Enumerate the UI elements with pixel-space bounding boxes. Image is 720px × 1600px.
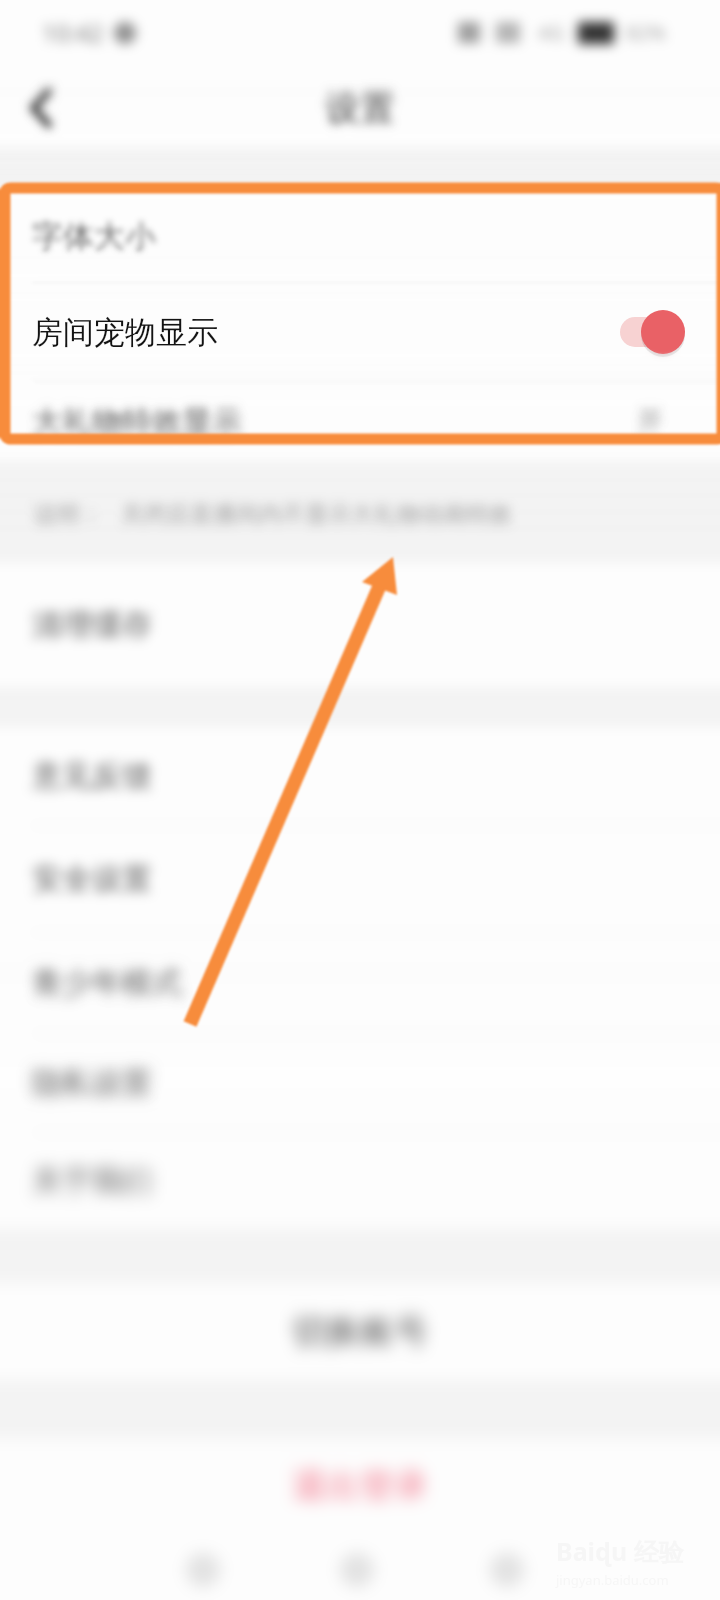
button[interactable]: 隐私设置	[0, 1034, 720, 1132]
button[interactable]: 青少年模式	[0, 933, 720, 1033]
button[interactable]: 清理缓存	[0, 563, 720, 687]
button[interactable]: Back	[186, 1553, 220, 1587]
button[interactable]: Back	[13, 80, 69, 136]
button[interactable]: 意见反馈	[0, 727, 720, 825]
button[interactable]: 退出登录	[0, 1439, 720, 1531]
button[interactable]: 青少年模式	[0, 933, 720, 1033]
button[interactable]: 青少年模式	[0, 933, 720, 1033]
button[interactable]: Back	[186, 1553, 220, 1587]
button[interactable]: Back	[13, 80, 69, 136]
staticText: 切换账号	[292, 1310, 428, 1353]
button[interactable]: Recents	[490, 1553, 524, 1587]
button[interactable]: 青少年模式	[0, 933, 720, 1033]
button[interactable]: 安全设置	[0, 826, 720, 932]
button[interactable]: 大礼物特效显示	[0, 382, 720, 461]
button[interactable]: 退出登录	[0, 1439, 720, 1531]
button[interactable]: 隐私设置	[0, 1034, 720, 1132]
button[interactable]: 意见反馈	[0, 727, 720, 825]
button[interactable]: Home	[340, 1553, 374, 1587]
button[interactable]: 切换账号	[0, 1283, 720, 1380]
button[interactable]: 切换账号	[0, 1283, 720, 1380]
button[interactable]: Back	[13, 80, 69, 136]
button[interactable]: 房间宠物显示	[0, 283, 720, 381]
button[interactable]: 房间宠物显示	[0, 283, 720, 381]
button[interactable]: Home	[340, 1553, 374, 1587]
button[interactable]: Back	[13, 80, 69, 136]
button[interactable]: 关于我们	[0, 1133, 720, 1229]
button[interactable]: 安全设置	[0, 826, 720, 932]
button[interactable]: 安全设置	[0, 826, 720, 932]
button[interactable]: Recents	[490, 1553, 524, 1587]
button[interactable]: 字体大小	[0, 190, 720, 282]
button[interactable]: 青少年模式	[0, 933, 720, 1033]
button[interactable]: 青少年模式	[0, 933, 720, 1033]
button[interactable]: 安全设置	[0, 826, 720, 932]
button[interactable]: 隐私设置	[0, 1034, 720, 1132]
button[interactable]: Back	[186, 1553, 220, 1587]
button[interactable]: 隐私设置	[0, 1034, 720, 1132]
button[interactable]: 字体大小	[0, 190, 720, 282]
button[interactable]: Room pet display toggle	[620, 307, 685, 357]
button[interactable]: Home	[340, 1553, 374, 1587]
button[interactable]: 房间宠物显示	[0, 283, 720, 381]
button[interactable]: 意见反馈	[0, 727, 720, 825]
button[interactable]: 大礼物特效显示	[0, 382, 720, 461]
button[interactable]: 清理缓存	[0, 563, 720, 687]
button[interactable]: 大礼物特效显示	[0, 382, 720, 461]
button[interactable]: Back	[13, 80, 69, 136]
button[interactable]: 切换账号	[0, 1283, 720, 1380]
button[interactable]: Home	[340, 1553, 374, 1587]
button[interactable]: Room pet display toggle	[620, 307, 685, 357]
button[interactable]: 切换账号	[0, 1283, 720, 1380]
button[interactable]: Room pet display toggle	[620, 307, 685, 357]
button[interactable]: 意见反馈	[0, 727, 720, 825]
button[interactable]: Recents	[490, 1553, 524, 1587]
button[interactable]: 房间宠物显示	[0, 283, 720, 381]
button[interactable]: 安全设置	[0, 826, 720, 932]
button[interactable]: 关于我们	[0, 1133, 720, 1229]
button[interactable]: 退出登录	[0, 1439, 720, 1531]
button[interactable]: 意见反馈	[0, 727, 720, 825]
button[interactable]: Back	[13, 80, 69, 136]
button[interactable]: 关于我们	[0, 1133, 720, 1229]
button[interactable]: 清理缓存	[0, 563, 720, 687]
button[interactable]: 安全设置	[0, 826, 720, 932]
button[interactable]: 清理缓存	[0, 563, 720, 687]
button[interactable]: Back	[186, 1553, 220, 1587]
button[interactable]: 关于我们	[0, 1133, 720, 1229]
button[interactable]: 隐私设置	[0, 1034, 720, 1132]
button[interactable]: 大礼物特效显示	[0, 382, 720, 461]
button[interactable]: 退出登录	[0, 1439, 720, 1531]
button[interactable]: Home	[340, 1553, 374, 1587]
button[interactable]: Room pet display toggle	[620, 307, 685, 357]
staticText: 房间宠物显示	[32, 313, 218, 352]
button[interactable]: 字体大小	[0, 190, 720, 282]
button[interactable]: Back	[186, 1553, 220, 1587]
button[interactable]: Recents	[490, 1553, 524, 1587]
button[interactable]: 大礼物特效显示	[0, 382, 720, 461]
button[interactable]: 房间宠物显示	[0, 283, 720, 381]
button[interactable]: 关于我们	[0, 1133, 720, 1229]
button[interactable]: Home	[340, 1553, 374, 1587]
button[interactable]: 切换账号	[0, 1283, 720, 1380]
button[interactable]: 退出登录	[0, 1439, 720, 1531]
button[interactable]: 切换账号	[0, 1283, 720, 1380]
button[interactable]: 字体大小	[0, 190, 720, 282]
button[interactable]: 隐私设置	[0, 1034, 720, 1132]
button[interactable]: Recents	[490, 1553, 524, 1587]
button[interactable]: 房间宠物显示	[0, 283, 720, 381]
button[interactable]: 关于我们	[0, 1133, 720, 1229]
button[interactable]: Room pet display toggle	[620, 307, 685, 357]
button[interactable]: 意见反馈	[0, 727, 720, 825]
button[interactable]: 清理缓存	[0, 563, 720, 687]
button[interactable]: 字体大小	[0, 190, 720, 282]
button[interactable]: 退出登录	[0, 1439, 720, 1531]
button[interactable]: Back	[186, 1553, 220, 1587]
staticText: 退出登录	[292, 1464, 428, 1507]
button[interactable]: 字体大小	[0, 190, 720, 282]
staticText: 隐私设置	[32, 1064, 152, 1102]
button[interactable]: 清理缓存	[0, 563, 720, 687]
button[interactable]: 大礼物特效显示	[0, 382, 720, 461]
button[interactable]: Recents	[490, 1553, 524, 1587]
button[interactable]: Room pet display toggle	[620, 307, 685, 357]
